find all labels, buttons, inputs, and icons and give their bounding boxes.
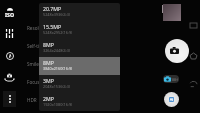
- staticText: Resolution: [27, 25, 39, 31]
- button[interactable]: 2MP: [39, 93, 120, 111]
- staticText: 3264x2448(4:3): [43, 48, 71, 53]
- button[interactable]: Back: [188, 78, 198, 88]
- button[interactable]: Smile Shutter: [27, 55, 39, 73]
- button[interactable]: Switch camera: [1, 68, 18, 85]
- staticText: Focus mode: [27, 79, 39, 85]
- button[interactable]: Photo video switch: [163, 75, 179, 83]
- button[interactable]: Take photo: [165, 39, 189, 63]
- staticText: ISO: [5, 11, 14, 18]
- staticText: 2MP: [43, 95, 54, 102]
- button[interactable]: Home: [188, 51, 198, 61]
- button[interactable]: 8MP: [39, 57, 120, 75]
- button[interactable]: 3MP: [39, 75, 120, 93]
- staticText: 1920x1080(16:9): [43, 102, 73, 107]
- button[interactable]: ISO: [1, 4, 18, 21]
- staticText: 3MP: [43, 77, 54, 84]
- button[interactable]: Resolution: [27, 19, 39, 37]
- button[interactable]: HDR: [27, 91, 39, 109]
- button[interactable]: Gallery: [163, 4, 181, 21]
- staticText: HDR: [27, 97, 37, 103]
- staticText: 20.7MP: [43, 5, 62, 12]
- button[interactable]: 8MP: [39, 39, 120, 57]
- staticText: 8MP: [43, 59, 54, 66]
- button[interactable]: 20.7MP: [39, 3, 120, 21]
- button[interactable]: Focus mode: [27, 73, 39, 91]
- button[interactable]: More options: [3, 91, 16, 107]
- button[interactable]: White balance: [1, 47, 18, 64]
- staticText: 5248x2952(16:9): [43, 30, 73, 35]
- staticText: 3840x2160(16:9): [43, 66, 73, 71]
- button[interactable]: Recents: [188, 20, 198, 30]
- button[interactable]: Adjust settings: [1, 25, 18, 42]
- button[interactable]: 15.5MP: [39, 21, 120, 39]
- staticText: Smile Shutter: [27, 61, 39, 67]
- button[interactable]: Shooting modes: [164, 92, 179, 107]
- staticText: 2048x1536(4:3): [43, 84, 71, 89]
- staticText: 5248x3936(4:3): [43, 12, 71, 17]
- staticText: Self-timer: [27, 43, 39, 49]
- staticText: 8MP: [43, 41, 54, 48]
- button[interactable]: Self-timer: [27, 37, 39, 55]
- staticText: 15.5MP: [43, 23, 62, 30]
